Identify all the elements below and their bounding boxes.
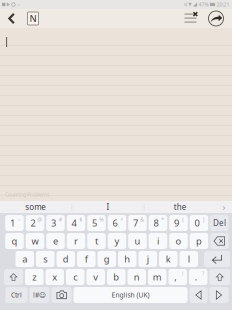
button[interactable]: 0 <box>190 215 208 231</box>
staticText: j <box>147 253 149 265</box>
button[interactable]: w <box>26 233 44 249</box>
button[interactable]: e <box>46 233 65 249</box>
staticText: 1 <box>10 217 15 229</box>
staticText: w <box>31 235 38 247</box>
staticText: 8 <box>153 217 158 229</box>
button[interactable]: y <box>108 233 126 249</box>
staticText: i <box>157 235 159 247</box>
staticText: ^ <box>120 216 123 223</box>
button[interactable]: Ctrl <box>5 287 27 303</box>
staticText: n <box>134 271 140 283</box>
button[interactable]: l <box>179 251 198 267</box>
button[interactable]: t <box>87 233 106 249</box>
staticText: the <box>174 202 187 212</box>
button[interactable]: c <box>66 269 84 285</box>
button[interactable]: Back <box>1 9 22 28</box>
staticText: d <box>63 253 69 265</box>
button[interactable]: Move left <box>189 287 207 303</box>
button[interactable]: n <box>127 269 146 285</box>
button[interactable]: Move right <box>209 287 228 303</box>
button[interactable]: v <box>86 269 105 285</box>
button[interactable]: k <box>159 251 177 267</box>
staticText: 3 <box>51 217 56 229</box>
button[interactable]: 3 <box>46 215 65 231</box>
staticText: 5 <box>92 217 97 229</box>
button[interactable]: Camera <box>51 287 71 303</box>
staticText: 7 <box>133 217 138 229</box>
button[interactable]: I <box>72 201 144 213</box>
button[interactable]: g <box>97 251 116 267</box>
staticText: o <box>175 235 181 247</box>
staticText: 47% <box>198 1 208 8</box>
staticText: 2 <box>30 217 35 229</box>
staticText: ) <box>203 216 205 223</box>
button[interactable]: !#☺ <box>29 287 49 303</box>
button[interactable]: , <box>168 269 187 285</box>
staticText: v <box>93 271 98 283</box>
button[interactable]: u <box>128 233 147 249</box>
staticText: ( <box>182 216 184 223</box>
button[interactable]: r <box>67 233 85 249</box>
button[interactable]: Return <box>204 251 230 267</box>
button[interactable]: Backspace <box>210 233 229 249</box>
button[interactable]: m <box>148 269 166 285</box>
staticText: Counting Problems <box>5 191 50 198</box>
staticText: f <box>85 253 88 265</box>
staticText: t <box>95 235 98 247</box>
staticText: 0 <box>194 217 199 229</box>
staticText: ~ <box>18 216 21 223</box>
staticText: m <box>153 271 162 283</box>
button[interactable]: x <box>45 269 64 285</box>
staticText: . <box>195 271 198 283</box>
staticText: 9 <box>174 217 179 229</box>
staticText: some <box>25 202 46 212</box>
button[interactable]: English (UK) <box>73 287 187 303</box>
button[interactable]: the <box>144 201 216 213</box>
staticText: a <box>22 253 27 265</box>
button[interactable]: Notebook <box>22 9 44 28</box>
button[interactable]: q <box>5 233 24 249</box>
button[interactable]: h <box>118 251 136 267</box>
button[interactable]: a <box>15 251 34 267</box>
button[interactable]: 9 <box>169 215 188 231</box>
button[interactable]: 6 <box>108 215 126 231</box>
button[interactable]: 1 <box>5 215 24 231</box>
staticText: p <box>196 235 202 247</box>
button[interactable]: 5 <box>87 215 106 231</box>
button[interactable]: Shift <box>4 269 23 285</box>
staticText: › <box>222 201 225 213</box>
staticText: 4 <box>71 217 76 229</box>
button[interactable]: some <box>0 201 71 213</box>
staticText: 6 <box>112 217 117 229</box>
button[interactable]: 4 <box>67 215 85 231</box>
button[interactable]: . <box>189 269 207 285</box>
staticText: g <box>104 253 110 265</box>
button[interactable]: i <box>149 233 167 249</box>
button[interactable]: 2 <box>26 215 44 231</box>
staticText: % <box>99 216 103 223</box>
staticText: l <box>188 253 190 265</box>
button[interactable]: o <box>169 233 188 249</box>
button[interactable]: Share <box>203 9 229 28</box>
button[interactable]: f <box>77 251 95 267</box>
button[interactable]: More suggestions <box>216 201 232 213</box>
staticText: 4 <box>184 1 187 8</box>
staticText: u <box>134 235 140 247</box>
button[interactable]: j <box>138 251 157 267</box>
button[interactable]: 7 <box>128 215 147 231</box>
staticText: ··· <box>17 1 20 8</box>
button[interactable]: 8 <box>149 215 167 231</box>
button[interactable]: b <box>107 269 125 285</box>
staticText: b <box>113 271 119 283</box>
button[interactable]: d <box>56 251 75 267</box>
staticText: Ctrl <box>11 291 22 299</box>
button[interactable]: s <box>36 251 54 267</box>
button[interactable]: Del <box>210 215 229 231</box>
button[interactable]: z <box>25 269 43 285</box>
button[interactable]: p <box>190 233 208 249</box>
staticText: I <box>106 202 109 212</box>
button[interactable]: Checklist <box>178 9 203 28</box>
staticText: # <box>59 216 62 223</box>
staticText: q <box>11 235 17 247</box>
button[interactable]: Shift <box>209 269 230 285</box>
